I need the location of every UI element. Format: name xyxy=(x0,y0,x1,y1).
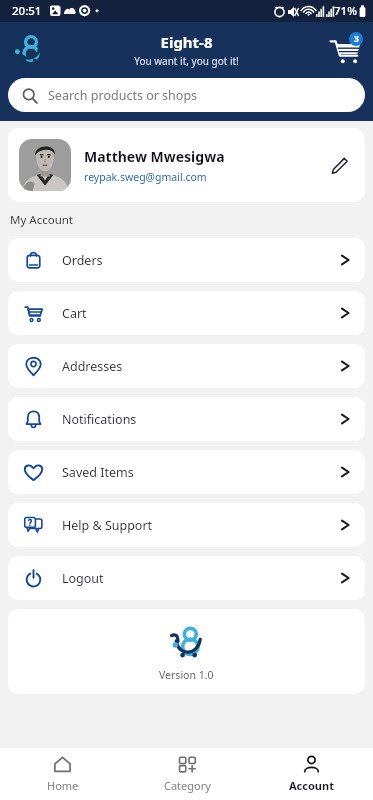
staticText: Account xyxy=(289,778,334,793)
staticText: Help & Support xyxy=(62,517,153,534)
button[interactable]: Notifications xyxy=(8,397,365,441)
button[interactable]: Help & Support xyxy=(8,503,365,547)
button[interactable]: Logout xyxy=(8,556,365,600)
button[interactable]: Eight-8 logo xyxy=(8,30,48,70)
staticText: Cart xyxy=(62,305,87,322)
staticText: Search products or shops xyxy=(48,87,198,104)
staticText: Eight-8 xyxy=(160,32,213,52)
button[interactable]: Cart xyxy=(8,291,365,335)
button[interactable]: Addresses xyxy=(8,344,365,388)
staticText: 71% xyxy=(334,3,357,19)
staticText: 20:51 xyxy=(12,3,42,19)
staticText: My Account xyxy=(10,212,73,228)
staticText: Category xyxy=(164,778,211,793)
button[interactable]: Search products or shops xyxy=(8,78,365,112)
staticText: Saved Items xyxy=(62,464,134,481)
button[interactable]: Matthew Mwesigwa xyxy=(8,128,365,202)
staticText: Version 1.0 xyxy=(159,668,214,682)
button[interactable]: Saved Items xyxy=(8,450,365,494)
staticText: Matthew Mwesigwa xyxy=(84,147,225,166)
staticText: Home xyxy=(47,778,79,793)
staticText: reypak.sweg@gmail.com xyxy=(84,170,207,184)
staticText: Logout xyxy=(62,570,104,587)
button[interactable]: Orders xyxy=(8,238,365,282)
staticText: Orders xyxy=(62,252,103,269)
staticText: 3 xyxy=(354,33,359,45)
staticText: Notifications xyxy=(62,411,137,428)
button[interactable]: Cart, 3 items xyxy=(327,32,363,68)
staticText: You want it, you got it! xyxy=(134,54,239,68)
staticText: Addresses xyxy=(62,358,123,375)
button[interactable]: Category xyxy=(125,748,249,800)
button[interactable]: Home xyxy=(0,748,125,800)
button[interactable]: Edit profile xyxy=(324,150,354,180)
button[interactable]: Account xyxy=(249,748,373,800)
